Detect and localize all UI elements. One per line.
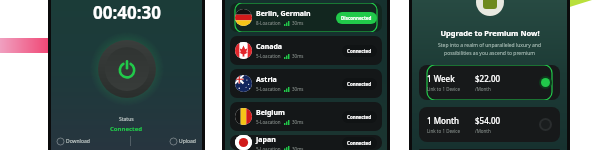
staticText: 1 Week xyxy=(427,73,455,84)
staticText: /Month xyxy=(475,128,491,134)
staticText: Disconnected xyxy=(341,15,372,21)
staticText: Upload xyxy=(179,138,196,145)
button[interactable]: Connected xyxy=(342,137,377,149)
button[interactable]: Connected xyxy=(342,45,377,57)
staticText: 30ms xyxy=(292,86,304,92)
staticText: Link to 1 Device xyxy=(427,128,461,134)
button[interactable]: 1 Week xyxy=(419,65,560,100)
staticText: Download xyxy=(66,138,90,145)
staticText: 30ms xyxy=(292,119,304,125)
staticText: Japan xyxy=(256,135,276,145)
button[interactable]: 1 Month xyxy=(419,107,560,142)
staticText: 5-Loacation xyxy=(256,53,281,59)
button[interactable]: Disconnected xyxy=(336,12,377,24)
staticText: 30ms xyxy=(292,20,304,26)
staticText: 30ms xyxy=(292,146,304,150)
staticText: 30ms xyxy=(292,53,304,59)
staticText: Step into a realm of unparalleled luxury… xyxy=(425,42,554,57)
staticText: Connected xyxy=(347,140,372,146)
staticText: Connected xyxy=(347,114,372,120)
staticText: /Month xyxy=(475,86,491,92)
staticText: Connected xyxy=(347,48,372,54)
staticText: $22.00 xyxy=(475,73,501,84)
staticText: Connected xyxy=(347,81,372,87)
staticText: Upgrade to Premium Now! xyxy=(440,28,540,38)
button[interactable]: Japan xyxy=(230,135,382,150)
button[interactable]: Belgium xyxy=(230,102,382,131)
staticText: $54.00 xyxy=(475,115,501,126)
staticText: 5-Loacation xyxy=(256,119,281,125)
staticText: 5-Loacation xyxy=(256,86,281,92)
staticText: Link to 1 Device xyxy=(427,86,461,92)
button[interactable]: Berlin, Germain xyxy=(230,3,382,32)
staticText: Berlin, Germain xyxy=(256,9,311,19)
staticText: 5-Loacation xyxy=(256,146,281,150)
staticText: Status xyxy=(119,116,134,123)
staticText: 00:40:30 xyxy=(93,1,161,24)
staticText: Canada xyxy=(256,42,283,52)
staticText: Belgium xyxy=(256,108,285,118)
staticText: 1 Month xyxy=(427,115,459,126)
button[interactable]: Connected xyxy=(342,111,377,123)
staticText: 8-Loacation xyxy=(256,20,281,26)
staticText: Astria xyxy=(256,75,277,85)
button[interactable]: Astria xyxy=(230,69,382,98)
button[interactable]: Canada xyxy=(230,36,382,65)
button[interactable]: Power toggle xyxy=(98,40,156,98)
staticText: Connected xyxy=(110,125,143,133)
button[interactable]: Connected xyxy=(342,78,377,90)
